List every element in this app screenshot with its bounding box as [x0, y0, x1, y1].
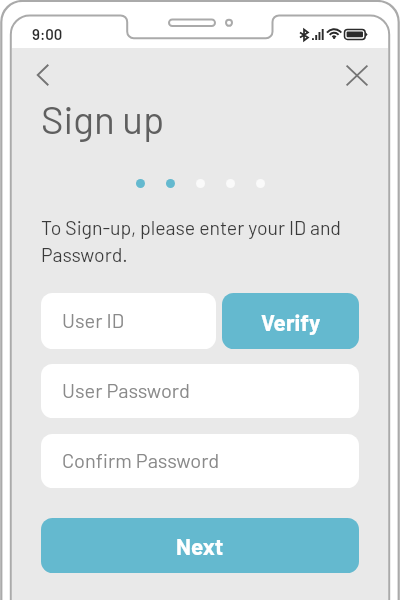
- staticText: User Password: [62, 378, 190, 402]
- button[interactable]: User Password: [41, 364, 359, 418]
- button[interactable]: Close: [334, 52, 380, 98]
- staticText: User ID: [62, 308, 125, 332]
- staticText: 9:00: [32, 25, 63, 43]
- button[interactable]: Back: [20, 52, 66, 98]
- button[interactable]: Confirm Password: [41, 434, 359, 488]
- button[interactable]: User ID: [41, 293, 216, 349]
- staticText: Next: [176, 532, 224, 559]
- staticText: Verify: [261, 308, 321, 335]
- button[interactable]: Verify: [222, 293, 359, 349]
- staticText: Sign up: [41, 95, 165, 141]
- staticText: Confirm Password: [62, 448, 220, 472]
- staticText: To Sign-up, please enter your ID and Pas…: [41, 215, 341, 265]
- button[interactable]: Next: [41, 518, 359, 573]
